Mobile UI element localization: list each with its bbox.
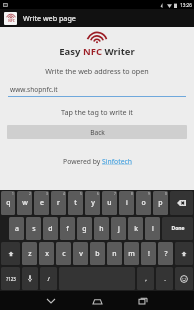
button[interactable]: v — [73, 242, 88, 265]
staticText: a — [15, 224, 19, 234]
button[interactable]: o — [136, 191, 151, 215]
staticText: 1 — [12, 192, 14, 196]
button[interactable]: b — [90, 242, 105, 265]
button[interactable]: j — [111, 217, 126, 240]
button[interactable]: ? — [158, 242, 173, 265]
button[interactable]: c — [56, 242, 71, 265]
staticText: p — [158, 198, 163, 208]
staticText: b — [95, 249, 100, 259]
button[interactable]: a — [9, 217, 24, 240]
staticText: , — [145, 275, 147, 283]
button[interactable]: y — [85, 191, 100, 215]
staticText: 8 — [131, 192, 133, 196]
button[interactable]: Voice input — [22, 267, 38, 290]
button[interactable]: App icon, navigate up — [4, 12, 17, 25]
button[interactable]: i — [119, 191, 134, 215]
button[interactable]: / — [40, 267, 57, 290]
staticText: f — [66, 224, 69, 234]
staticText: 9 — [148, 192, 150, 196]
button[interactable]: Close keyboard — [41, 294, 61, 308]
staticText: l — [152, 224, 154, 234]
button[interactable]: x — [39, 242, 54, 265]
button[interactable]: , — [137, 267, 154, 290]
staticText: 3 — [46, 192, 48, 196]
button[interactable]: u — [102, 191, 117, 215]
button[interactable]: q — [1, 191, 15, 215]
staticText: n — [112, 249, 117, 259]
button[interactable]: g — [77, 217, 92, 240]
staticText: Write web page — [23, 13, 76, 23]
staticText: . — [164, 275, 166, 283]
button[interactable]: t — [68, 191, 83, 215]
staticText: 2 — [29, 192, 31, 196]
staticText: w — [22, 198, 28, 208]
staticText: y — [91, 198, 95, 208]
staticText: x — [45, 249, 49, 259]
staticText: Done — [171, 225, 185, 232]
staticText: 4 — [63, 192, 65, 196]
button[interactable]: Shift — [175, 242, 193, 265]
staticText: 6 — [97, 192, 99, 196]
button[interactable]: s — [26, 217, 41, 240]
staticText: Easy NFC Writer — [59, 45, 135, 58]
button[interactable]: Powered by Sinfotech — [63, 157, 132, 166]
staticText: h — [99, 224, 104, 234]
staticText: m — [128, 249, 135, 259]
button[interactable]: Shift — [1, 242, 20, 265]
button[interactable]: f — [60, 217, 75, 240]
button[interactable]: w — [17, 191, 32, 215]
staticText: 0 — [165, 192, 167, 196]
staticText: t — [74, 198, 77, 208]
button[interactable]: h — [94, 217, 109, 240]
button[interactable]: Done — [162, 217, 193, 240]
button[interactable]: Back — [7, 125, 187, 139]
staticText: ? — [164, 249, 168, 259]
staticText: / — [47, 275, 50, 283]
button[interactable]: z — [22, 242, 37, 265]
staticText: www.shopnfc.it — [10, 85, 186, 94]
staticText: d — [48, 224, 53, 234]
button[interactable]: ! — [141, 242, 156, 265]
staticText: ?123 — [6, 276, 16, 282]
button[interactable]: Recent apps — [133, 294, 153, 308]
staticText: s — [32, 224, 36, 234]
button[interactable]: Delete — [170, 191, 193, 215]
staticText: r — [57, 198, 60, 208]
staticText: u — [107, 198, 112, 208]
staticText: i — [126, 198, 128, 208]
staticText: NFC — [8, 19, 15, 23]
button[interactable]: p — [153, 191, 168, 215]
button[interactable]: r — [51, 191, 66, 215]
staticText: z — [28, 249, 32, 259]
button[interactable]: k — [128, 217, 143, 240]
staticText: Tap the tag to write it — [61, 107, 133, 117]
staticText: q — [6, 198, 11, 208]
button[interactable]: d — [43, 217, 58, 240]
button[interactable]: Emoji — [175, 267, 193, 290]
staticText: k — [134, 224, 138, 234]
staticText: j — [118, 224, 120, 234]
staticText: 5 — [80, 192, 82, 196]
staticText: Write the web address to open — [45, 66, 149, 76]
staticText: e — [40, 198, 44, 208]
staticText: Back — [90, 128, 105, 137]
button[interactable]: www.shopnfc.it — [8, 85, 186, 97]
button[interactable]: l — [145, 217, 160, 240]
button[interactable]: ?123 — [1, 267, 20, 290]
staticText: g — [82, 224, 87, 234]
staticText: 13:26 — [180, 2, 192, 8]
button[interactable]: m — [124, 242, 139, 265]
staticText: c — [62, 249, 66, 259]
button[interactable]: Home — [87, 294, 107, 308]
staticText: ! — [148, 249, 150, 259]
button[interactable]: e — [34, 191, 49, 215]
staticText: o — [141, 198, 146, 208]
staticText: 7 — [114, 192, 116, 196]
button[interactable]: n — [107, 242, 122, 265]
staticText: v — [79, 249, 83, 259]
button[interactable]: . — [156, 267, 173, 290]
